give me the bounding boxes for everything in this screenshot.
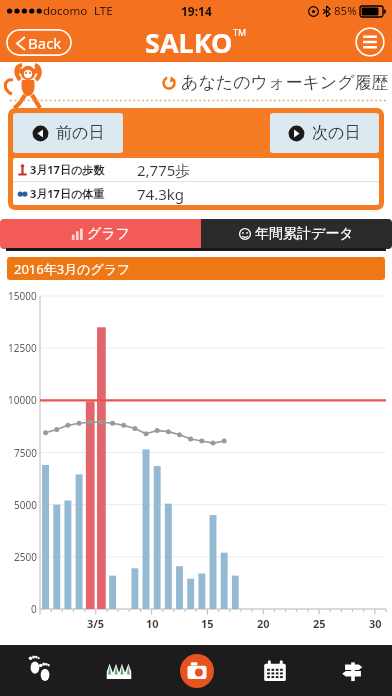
button[interactable]: Ranking [79, 645, 158, 696]
button[interactable]: 前の日 [13, 113, 123, 153]
staticText: 年間累計データ [255, 225, 354, 243]
button[interactable]: Routes [314, 645, 392, 696]
button[interactable]: Camera [158, 645, 236, 696]
staticText: Back [28, 33, 62, 53]
staticText: 15000 [8, 289, 37, 303]
staticText: グラフ [87, 225, 130, 243]
staticText: 12500 [8, 341, 37, 355]
button[interactable]: 次の日 [270, 113, 379, 153]
button[interactable]: Calendar [236, 645, 314, 696]
staticText: 74.3kg [137, 184, 184, 204]
staticText: 25 [313, 616, 326, 631]
staticText: 3月17日の体重 [30, 186, 105, 201]
button[interactable]: 3月17日の歩数 [13, 158, 379, 181]
staticText: LTE [94, 3, 113, 19]
staticText: SALKO [145, 24, 233, 61]
button[interactable]: Menu [355, 27, 385, 57]
staticText: 30 [369, 616, 382, 631]
staticText: 10000 [8, 393, 37, 407]
staticText: 前の日 [56, 123, 105, 143]
staticText: 10 [146, 616, 159, 631]
button[interactable]: Back [5, 29, 73, 56]
button[interactable]: 年間累計データ [201, 219, 392, 249]
staticText: 次の日 [312, 123, 361, 143]
staticText: 85% [334, 3, 357, 19]
staticText: 0 [31, 602, 37, 616]
button[interactable]: 3月17日の体重 [13, 182, 379, 205]
staticText: 2,775歩 [137, 160, 191, 180]
staticText: 2016年3月のグラフ [14, 260, 131, 278]
staticText: 3/5 [87, 616, 105, 631]
staticText: 20 [257, 616, 270, 631]
staticText: 19:14 [181, 3, 212, 19]
button[interactable]: グラフ [0, 219, 201, 249]
staticText: 3月17日の歩数 [30, 162, 105, 177]
staticText: あなたのウォーキング履歴 [181, 72, 389, 93]
staticText: 5000 [14, 498, 37, 512]
button[interactable]: Steps [0, 645, 79, 696]
staticText: 2500 [14, 550, 37, 564]
staticText: docomo [43, 3, 88, 19]
staticText: 15 [201, 616, 214, 631]
staticText: TM [233, 26, 247, 38]
staticText: 7500 [14, 446, 37, 460]
